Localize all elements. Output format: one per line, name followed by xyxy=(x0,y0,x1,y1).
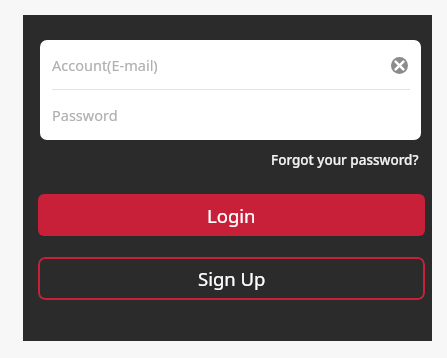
button[interactable]: Password xyxy=(40,90,421,140)
staticText: Password xyxy=(52,105,118,125)
staticText: Forgot your password? xyxy=(271,151,419,169)
button[interactable]: Clear account field xyxy=(387,53,411,77)
button[interactable]: Forgot your password? xyxy=(269,148,421,172)
staticText: Sign Up xyxy=(198,266,266,291)
button[interactable]: Login xyxy=(38,194,425,236)
staticText: Login xyxy=(207,203,256,228)
staticText: Account(E-mail) xyxy=(52,55,387,75)
button[interactable]: Account(E-mail) xyxy=(40,40,421,89)
button[interactable]: Sign Up xyxy=(38,257,425,300)
